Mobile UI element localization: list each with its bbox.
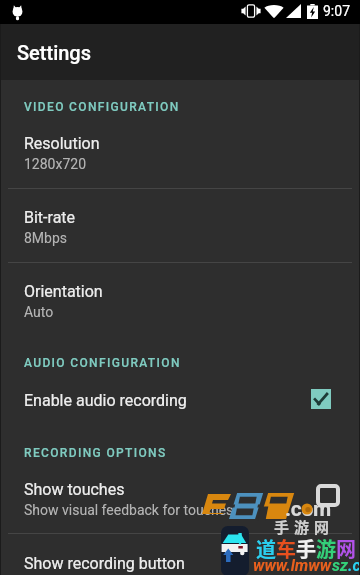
staticText: Auto	[24, 304, 54, 320]
button[interactable]: Bit-rate	[0, 188, 360, 262]
staticText: Show recording button	[24, 554, 185, 573]
staticText: 手游网	[274, 516, 335, 538]
staticText: Resolution	[24, 134, 100, 153]
staticText: Settings	[17, 41, 92, 64]
staticText: 游	[316, 534, 336, 563]
staticText: 8Mbps	[24, 230, 68, 246]
staticText: VIDEO CONFIGURATION	[24, 100, 180, 114]
staticText: 车	[276, 534, 296, 563]
staticText: 网	[336, 534, 356, 563]
staticText: AUDIO CONFIGURATION	[24, 356, 181, 370]
staticText: 道	[256, 534, 276, 563]
staticText: 手	[296, 534, 316, 563]
other: Enable audio recording checkbox	[310, 388, 331, 409]
button[interactable]: Orientation	[0, 262, 360, 336]
staticText: Show visual feedback for touches	[24, 502, 234, 518]
other: Vibrate mode	[241, 4, 261, 18]
button[interactable]: Enable audio recording	[0, 370, 360, 426]
staticText: Enable audio recording	[24, 391, 187, 410]
staticText: .com	[348, 556, 360, 575]
other: App icon	[221, 526, 249, 575]
other: Wi-Fi signal	[264, 4, 284, 18]
staticText: .com	[285, 497, 331, 522]
staticText: Show touches	[24, 480, 125, 499]
staticText: RECORDING OPTIONS	[24, 446, 167, 460]
staticText: www.lmww	[253, 556, 332, 575]
staticText: 9:07	[323, 3, 350, 19]
staticText: 1280x720	[24, 156, 87, 172]
button[interactable]: Resolution	[0, 114, 360, 188]
staticText: Bit-rate	[24, 208, 76, 227]
button[interactable]: Show touches	[0, 460, 360, 534]
staticText: sz	[332, 556, 348, 575]
staticText: Orientation	[24, 282, 103, 301]
button[interactable]: Show recording button	[0, 534, 360, 575]
